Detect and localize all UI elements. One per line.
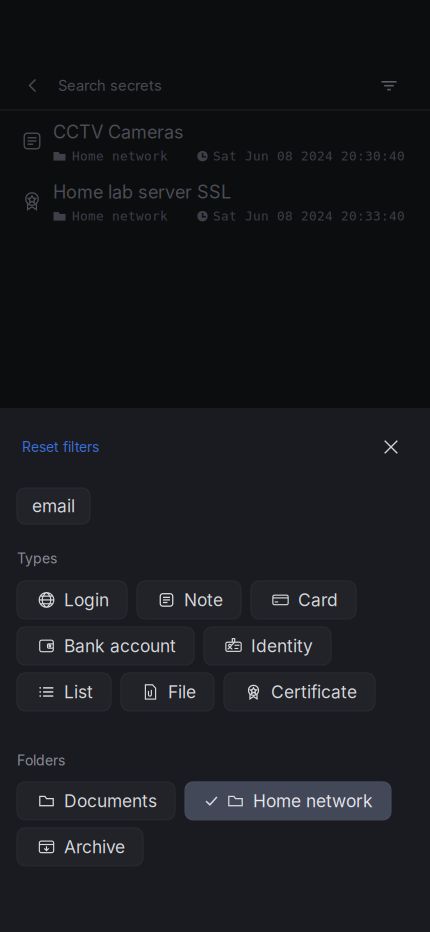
button[interactable]: Close [374, 430, 408, 464]
staticText: Home network [72, 149, 168, 163]
staticText: Home lab server SSL [53, 181, 231, 203]
button[interactable]: List [17, 673, 111, 711]
staticText: Documents [64, 790, 157, 811]
staticText: Home network [72, 209, 168, 223]
button[interactable]: Home lab server SSL [0, 171, 430, 231]
staticText: Identity [251, 635, 313, 656]
staticText: Archive [64, 836, 125, 857]
staticText: CCTV Cameras [53, 121, 184, 143]
button[interactable]: Reset filters [22, 430, 99, 464]
staticText: Note [184, 589, 223, 610]
staticText: Types [17, 550, 57, 567]
staticText: Sat Jun 08 2024 20:33:40 [213, 209, 405, 223]
button[interactable]: Back [0, 62, 58, 109]
staticText: Card [298, 589, 338, 610]
staticText: List [64, 681, 93, 702]
button[interactable]: Documents [17, 782, 175, 820]
button[interactable]: Archive [17, 828, 143, 866]
button[interactable]: Identity [204, 627, 331, 665]
staticText: Certificate [271, 681, 357, 702]
button[interactable]: Note [137, 581, 241, 619]
button[interactable]: Login [17, 581, 127, 619]
staticText: Bank account [64, 635, 176, 656]
button[interactable]: Filter [369, 62, 409, 109]
staticText: Search secrets [58, 77, 162, 94]
staticText: Login [64, 589, 109, 610]
staticText: File [168, 681, 196, 702]
staticText: Reset filters [22, 438, 99, 455]
button[interactable]: File [121, 673, 214, 711]
staticText: email [32, 495, 75, 516]
staticText: Folders [17, 752, 65, 769]
staticText: Home network [253, 790, 373, 811]
button[interactable]: Bank account [17, 627, 194, 665]
button[interactable]: email [17, 488, 90, 524]
button[interactable]: Card [251, 581, 356, 619]
button[interactable]: Certificate [224, 673, 375, 711]
button[interactable]: CCTV Cameras [0, 111, 430, 171]
staticText: Sat Jun 08 2024 20:30:40 [213, 149, 405, 163]
button[interactable]: Home network [185, 782, 391, 820]
